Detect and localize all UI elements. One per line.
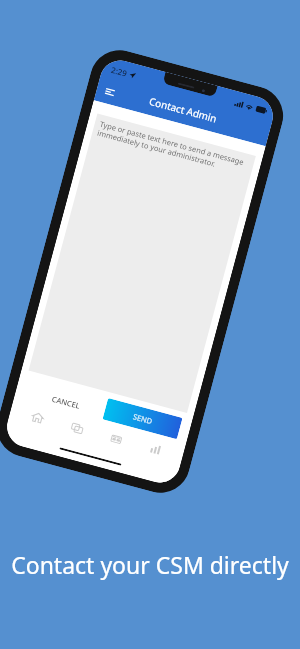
button[interactable]: CANCEL — [44, 387, 87, 417]
button[interactable]: Menu — [97, 80, 122, 104]
button[interactable]: SEND — [102, 398, 183, 439]
staticText: Contact Admin — [148, 94, 219, 125]
button[interactable]: Home — [23, 403, 52, 432]
button[interactable]: Stats — [141, 434, 170, 464]
staticText: SEND — [132, 411, 154, 426]
staticText: CANCEL — [51, 394, 81, 411]
staticText: Contact your CSM directly — [0, 549, 300, 580]
staticText: Type or paste text here to send a messag… — [96, 119, 251, 178]
button[interactable]: Cards — [63, 413, 92, 443]
button[interactable]: Badge — [101, 424, 131, 453]
staticText: 2:29 — [110, 64, 128, 79]
